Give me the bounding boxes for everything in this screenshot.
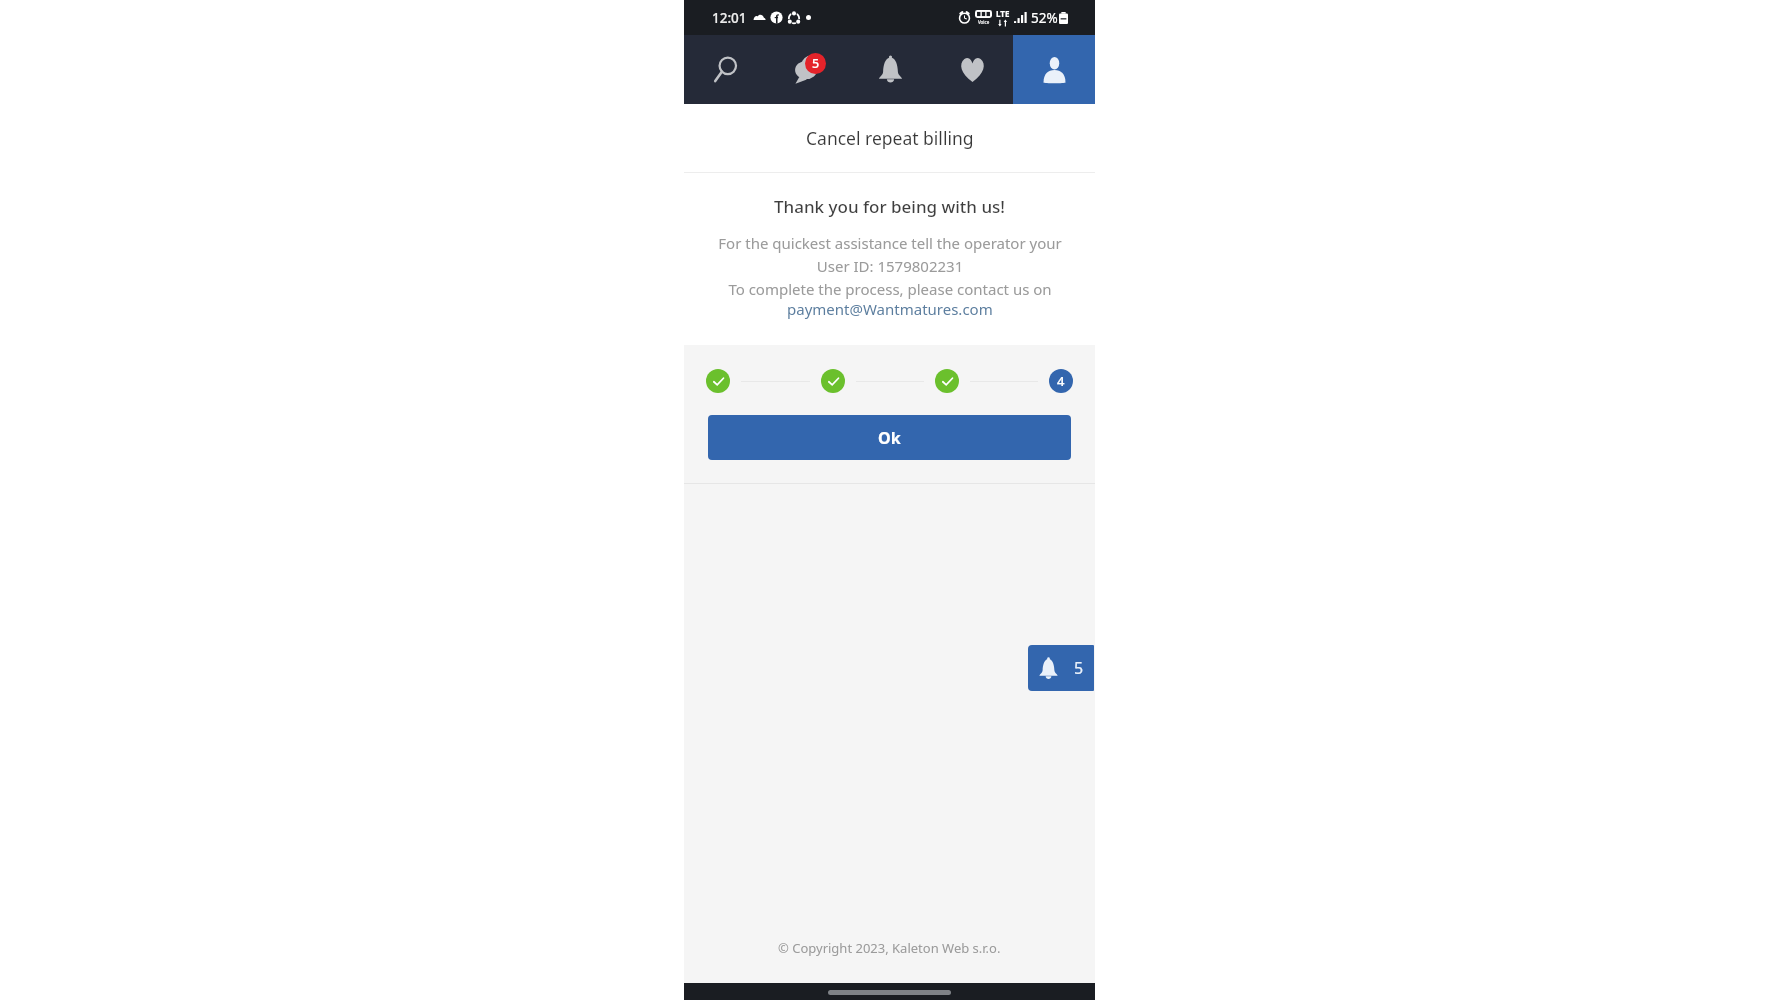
staticText: payment@Wantmatures.com xyxy=(787,299,993,319)
staticText: Cancel repeat billing xyxy=(806,126,974,150)
button[interactable]: payment@Wantmatures.com xyxy=(787,299,993,319)
staticText: 52% xyxy=(1031,9,1058,27)
staticText: 4 xyxy=(1057,372,1065,390)
button[interactable]: Profile xyxy=(1013,35,1095,104)
button[interactable] xyxy=(821,369,845,393)
button[interactable]: Notifications xyxy=(849,35,931,104)
staticText: 12:01 xyxy=(712,9,747,27)
button[interactable]: Ok xyxy=(708,415,1071,460)
staticText: Ok xyxy=(878,427,901,449)
button[interactable]: Favourites xyxy=(931,35,1013,104)
staticText: 5 xyxy=(1074,657,1084,679)
button[interactable]: Notifications xyxy=(1028,645,1094,691)
staticText: Thank you for being with us! xyxy=(774,195,1005,218)
staticText: 5 xyxy=(812,55,820,72)
staticText: © Copyright 2023, Kaleton Web s.r.o. xyxy=(778,939,1001,957)
staticText: LTE xyxy=(996,8,1010,19)
staticText: For the quickest assistance tell the ope… xyxy=(718,233,1062,299)
button[interactable]: Search xyxy=(684,35,767,104)
button[interactable]: Messages xyxy=(767,35,849,104)
staticText: Voice xyxy=(978,19,990,25)
button[interactable]: 4 xyxy=(1049,369,1073,393)
button[interactable] xyxy=(706,369,730,393)
button[interactable] xyxy=(935,369,959,393)
